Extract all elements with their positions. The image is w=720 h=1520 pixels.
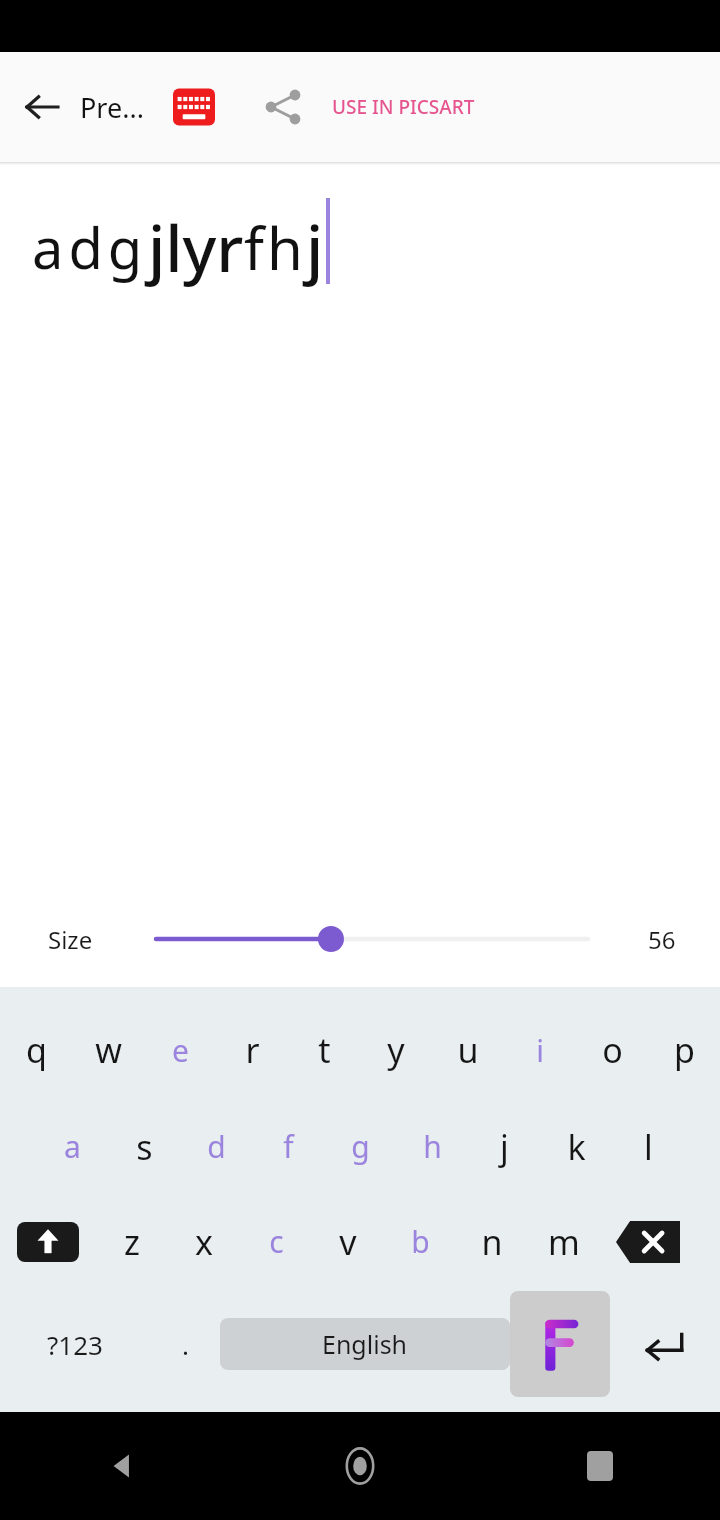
staticText: ?123: [47, 1327, 103, 1362]
button[interactable]: Back: [14, 79, 70, 135]
button[interactable]: d: [180, 1099, 252, 1194]
button[interactable]: k: [540, 1099, 612, 1194]
button[interactable]: p: [648, 1001, 720, 1099]
staticText: adg: [32, 209, 148, 285]
button[interactable]: i: [504, 1001, 576, 1099]
button[interactable]: h: [396, 1099, 468, 1194]
button[interactable]: Shift: [0, 1194, 96, 1289]
staticText: y: [387, 1027, 405, 1073]
button[interactable]: Backspace: [600, 1194, 696, 1289]
staticText: o: [602, 1027, 623, 1073]
button[interactable]: [150, 909, 594, 969]
button[interactable]: l: [612, 1099, 684, 1194]
staticText: e: [172, 1030, 189, 1071]
staticText: g: [351, 1126, 370, 1167]
button[interactable]: Back: [0, 1412, 240, 1520]
staticText: c: [269, 1221, 284, 1262]
button[interactable]: v: [312, 1194, 384, 1289]
staticText: z: [124, 1219, 140, 1265]
staticText: t: [318, 1027, 331, 1073]
staticText: 56: [648, 923, 676, 956]
button[interactable]: Home: [240, 1412, 480, 1520]
button[interactable]: m: [528, 1194, 600, 1289]
staticText: s: [136, 1124, 153, 1170]
button[interactable]: c: [240, 1194, 312, 1289]
staticText: u: [457, 1027, 479, 1073]
staticText: v: [339, 1219, 357, 1265]
staticText: Size: [48, 923, 93, 956]
button[interactable]: English: [220, 1318, 510, 1370]
staticText: a: [64, 1126, 81, 1167]
button[interactable]: Fonts keyboard: [510, 1291, 610, 1397]
staticText: m: [548, 1219, 580, 1265]
staticText: j: [306, 204, 324, 291]
button[interactable]: u: [432, 1001, 504, 1099]
button[interactable]: t: [288, 1001, 360, 1099]
staticText: x: [195, 1219, 213, 1265]
button[interactable]: Enter: [610, 1297, 720, 1392]
staticText: n: [481, 1219, 503, 1265]
button[interactable]: q: [0, 1001, 72, 1099]
button[interactable]: b: [384, 1194, 456, 1289]
staticText: Pre...: [80, 89, 144, 126]
staticText: k: [567, 1124, 586, 1170]
button[interactable]: USE IN PICSART: [328, 86, 479, 128]
button[interactable]: Recents: [480, 1412, 720, 1520]
button[interactable]: z: [96, 1194, 168, 1289]
staticText: f: [283, 1126, 294, 1167]
staticText: p: [674, 1027, 695, 1073]
staticText: i: [536, 1030, 544, 1071]
staticText: b: [411, 1221, 430, 1262]
staticText: j: [500, 1124, 509, 1170]
button[interactable]: g: [324, 1099, 396, 1194]
button[interactable]: e: [144, 1001, 216, 1099]
button[interactable]: j: [468, 1099, 540, 1194]
staticText: l: [644, 1124, 653, 1170]
button[interactable]: s: [108, 1099, 180, 1194]
button[interactable]: ?123: [0, 1297, 150, 1392]
staticText: fh: [244, 208, 306, 287]
staticText: r: [245, 1027, 260, 1073]
button[interactable]: .: [150, 1297, 220, 1392]
button[interactable]: w: [72, 1001, 144, 1099]
staticText: h: [423, 1126, 442, 1167]
button[interactable]: r: [216, 1001, 288, 1099]
staticText: w: [95, 1027, 122, 1073]
button[interactable]: n: [456, 1194, 528, 1289]
staticText: d: [207, 1126, 226, 1167]
button[interactable]: a: [36, 1099, 108, 1194]
button[interactable]: Keyboard: [168, 81, 220, 133]
staticText: English: [322, 1327, 408, 1361]
button[interactable]: Share: [256, 80, 310, 134]
button[interactable]: o: [576, 1001, 648, 1099]
button[interactable]: x: [168, 1194, 240, 1289]
button[interactable]: y: [360, 1001, 432, 1099]
staticText: jlyr: [148, 204, 244, 291]
staticText: q: [26, 1027, 47, 1073]
button[interactable]: f: [252, 1099, 324, 1194]
staticText: USE IN PICSART: [332, 94, 475, 120]
staticText: .: [182, 1327, 189, 1362]
